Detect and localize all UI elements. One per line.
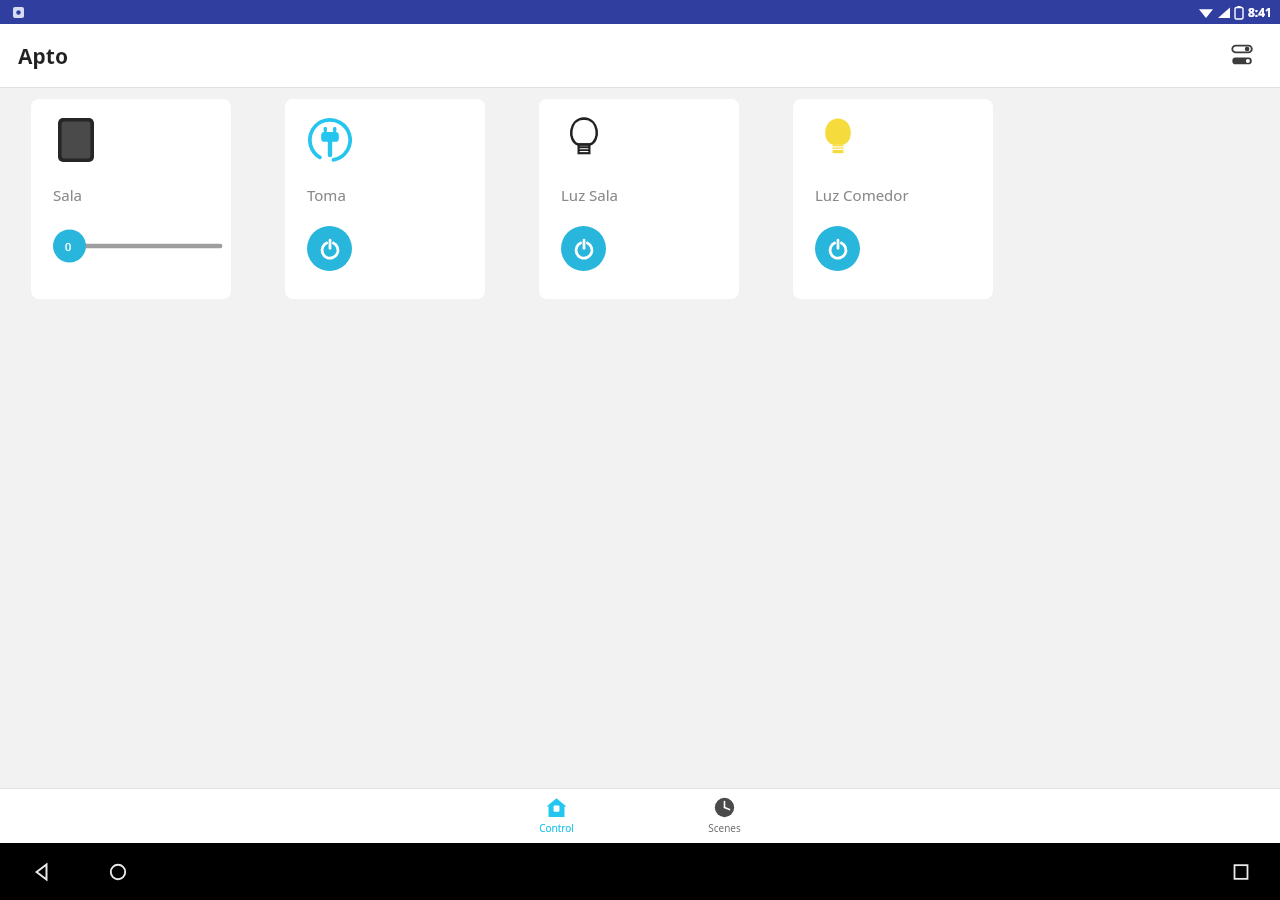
button[interactable]: Sala: [31, 99, 231, 299]
button[interactable]: Back: [30, 861, 52, 883]
button[interactable]: Luz Comedor: [793, 99, 993, 299]
button[interactable]: Control: [516, 788, 596, 843]
staticText: Scenes: [708, 821, 741, 835]
button[interactable]: Power toggle: [815, 226, 860, 271]
staticText: Control: [539, 821, 574, 835]
button[interactable]: Luz Sala: [539, 99, 739, 299]
button[interactable]: Home: [108, 862, 128, 882]
staticText: Sala: [53, 185, 82, 205]
button[interactable]: Power toggle: [307, 226, 352, 271]
staticText: 8:41: [1248, 4, 1272, 20]
staticText: Luz Comedor: [815, 185, 909, 205]
button[interactable]: Power toggle: [561, 226, 606, 271]
button[interactable]: 0: [53, 226, 229, 266]
staticText: Apto: [18, 42, 69, 71]
button[interactable]: Scenes: [684, 788, 764, 843]
button[interactable]: Settings: [1222, 34, 1266, 78]
button[interactable]: Recent apps: [1232, 863, 1250, 881]
staticText: Toma: [307, 185, 346, 205]
staticText: 0: [65, 239, 72, 254]
staticText: Luz Sala: [561, 185, 619, 205]
button[interactable]: Toma: [285, 99, 485, 299]
